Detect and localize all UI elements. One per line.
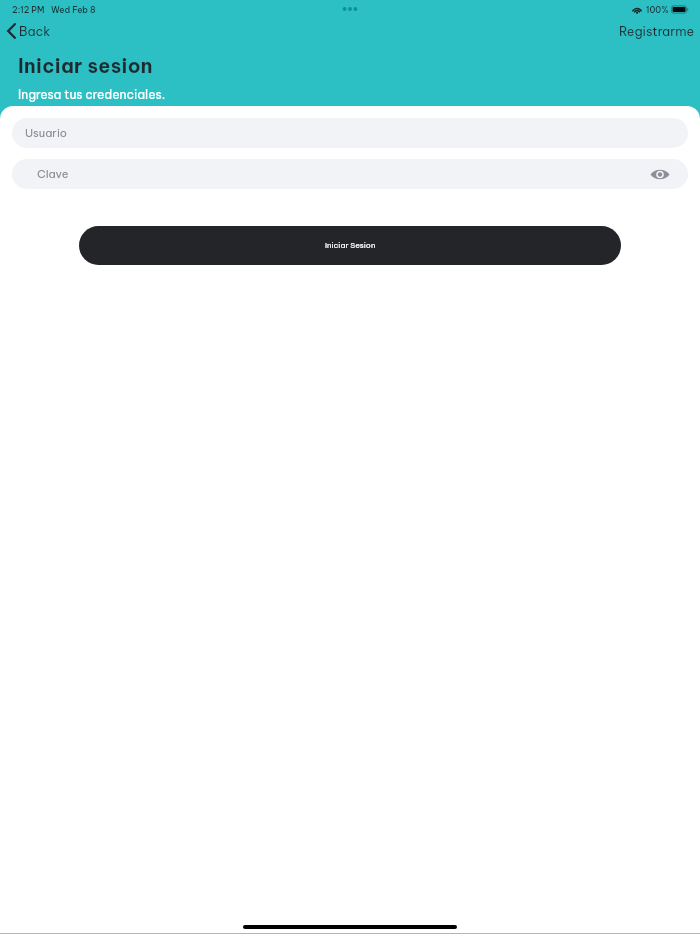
staticText: Back	[19, 23, 51, 39]
staticText: Iniciar sesion	[18, 53, 153, 78]
staticText: Wed Feb 8	[51, 4, 96, 15]
staticText: Usuario	[25, 126, 68, 140]
staticText: Iniciar Sesion	[325, 240, 376, 250]
button[interactable]: Back	[0, 19, 59, 43]
button[interactable]: Mostrar clave	[650, 168, 670, 181]
staticText: Ingresa tus credenciales.	[18, 87, 166, 102]
staticText: 2:12 PM	[12, 4, 45, 15]
button[interactable]: Iniciar Sesion	[79, 226, 621, 265]
staticText: Registrarme	[619, 23, 695, 39]
staticText: Clave	[37, 167, 69, 181]
button[interactable]: Usuario	[12, 118, 688, 148]
button[interactable]: Clave	[12, 159, 688, 189]
staticText: 100%	[646, 4, 669, 15]
button[interactable]: Registrarme	[611, 19, 700, 43]
